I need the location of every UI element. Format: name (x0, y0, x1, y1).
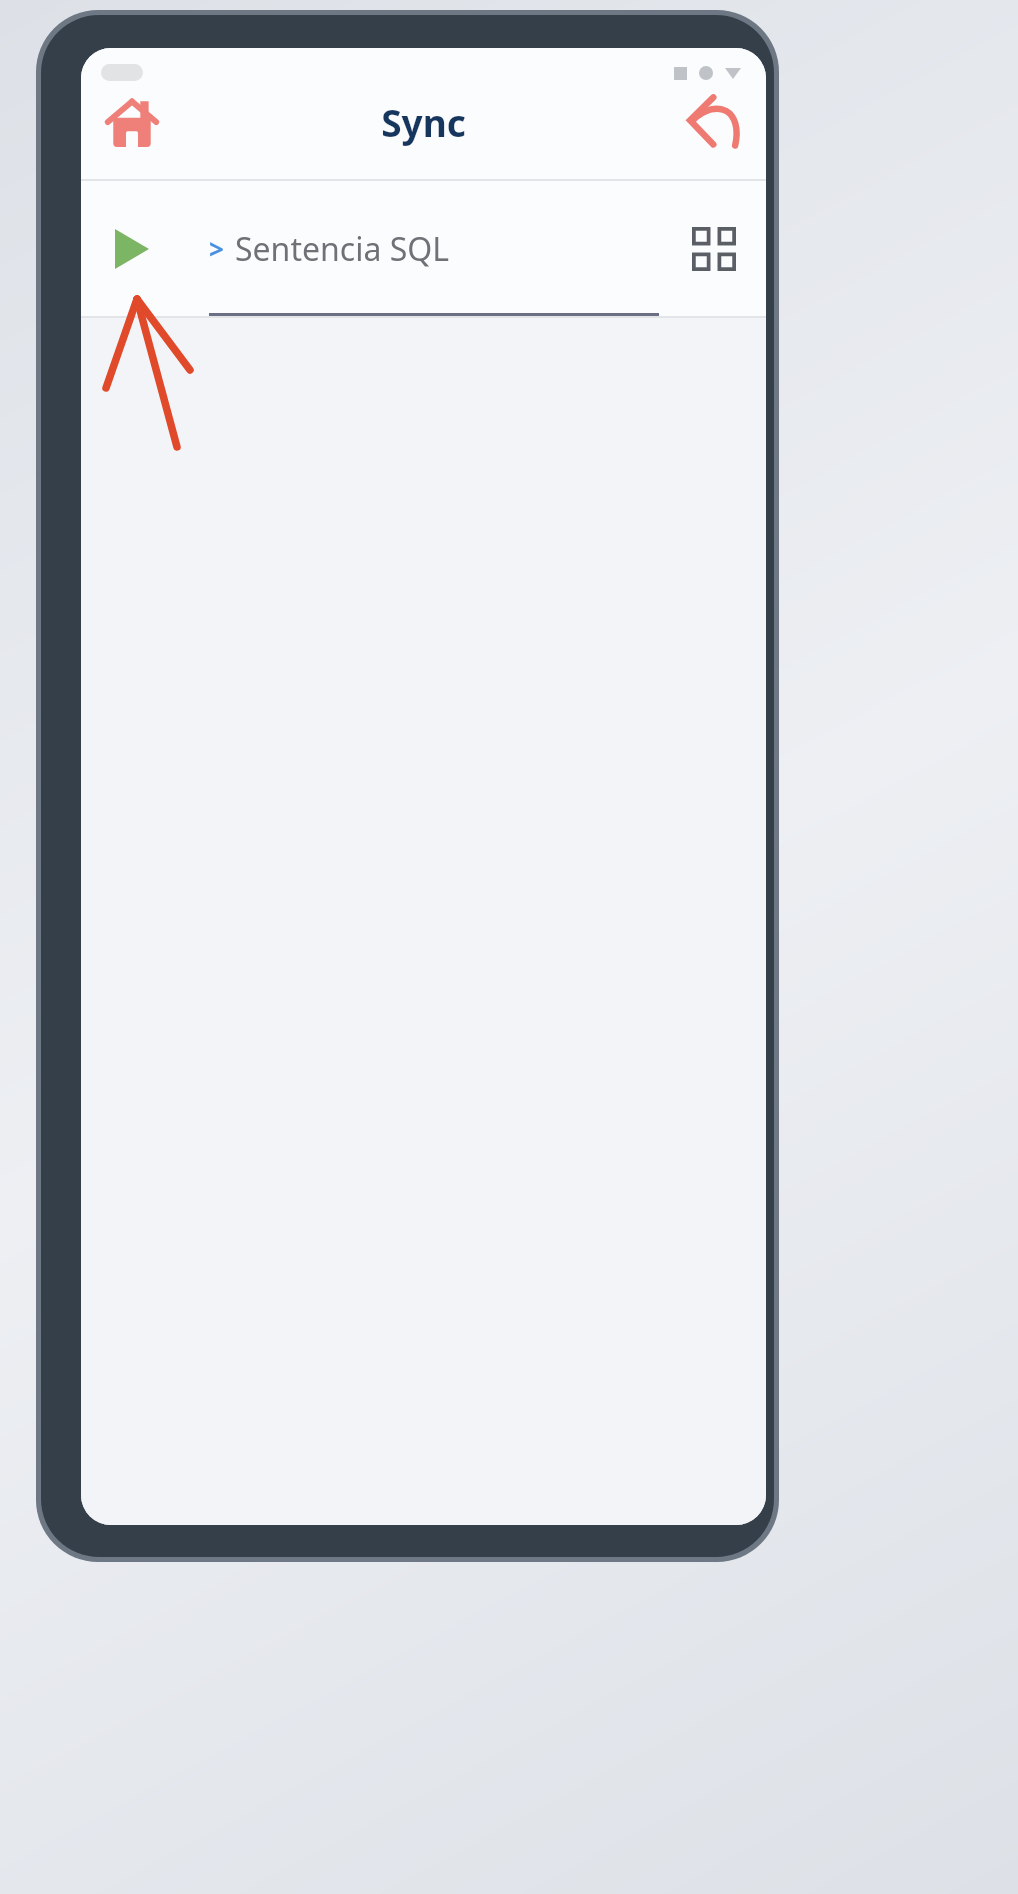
button[interactable]: Back (676, 83, 754, 161)
staticText: > (209, 231, 224, 266)
button[interactable]: Home (93, 83, 171, 161)
staticText: Sync (81, 97, 766, 147)
button[interactable]: Run (97, 214, 167, 284)
button[interactable]: > (209, 181, 658, 316)
button[interactable]: Grid view (674, 209, 754, 289)
staticText: Sentencia SQL (235, 227, 449, 271)
